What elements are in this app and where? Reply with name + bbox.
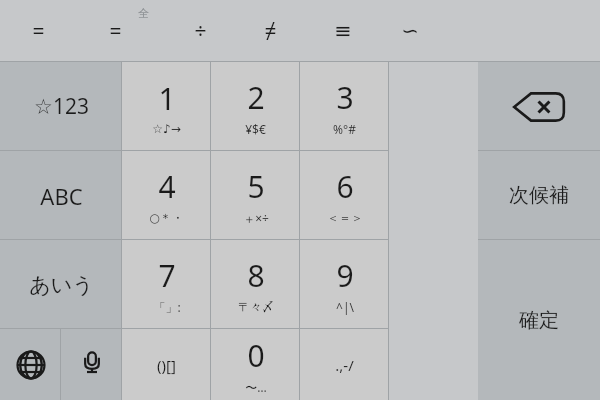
- button[interactable]: Change keyboard: [0, 329, 61, 400]
- staticText: =: [32, 17, 45, 46]
- staticText: 確定: [519, 308, 559, 333]
- button[interactable]: =: [85, 8, 145, 54]
- button[interactable]: 6: [300, 151, 389, 240]
- staticText: ○＊・: [149, 210, 184, 225]
- button[interactable]: 次候補: [478, 151, 600, 240]
- button[interactable]: ABC: [0, 151, 122, 240]
- staticText: 9: [336, 255, 354, 296]
- button[interactable]: ≠: [240, 8, 300, 54]
- staticText: 5: [247, 166, 265, 207]
- staticText: .,-/: [335, 355, 354, 375]
- staticText: ¥$€: [245, 121, 266, 137]
- staticText: 4: [158, 166, 176, 207]
- button[interactable]: あいう: [0, 240, 122, 329]
- staticText: ≡: [334, 19, 352, 43]
- staticText: 〜…: [245, 379, 267, 395]
- staticText: ☆♪→: [152, 122, 181, 136]
- button[interactable]: 7: [122, 240, 211, 329]
- staticText: ()[]: [157, 355, 176, 375]
- button[interactable]: 9: [300, 240, 389, 329]
- button[interactable]: =: [8, 8, 68, 54]
- button[interactable]: 1: [122, 62, 211, 151]
- button[interactable]: Backspace: [478, 62, 600, 151]
- staticText: 全: [138, 6, 149, 20]
- button[interactable]: ≡: [313, 8, 373, 54]
- staticText: 3: [336, 77, 354, 118]
- button[interactable]: ∽: [380, 8, 440, 54]
- staticText: ☆123: [34, 92, 89, 121]
- staticText: =: [109, 17, 122, 46]
- staticText: ∽: [401, 19, 419, 43]
- staticText: 「」:: [153, 299, 181, 315]
- button[interactable]: 0: [211, 329, 300, 400]
- staticText: ÷: [194, 17, 207, 46]
- button[interactable]: 4: [122, 151, 211, 240]
- button[interactable]: ()[]: [122, 329, 211, 400]
- staticText: 1: [158, 78, 176, 119]
- staticText: 2: [247, 77, 265, 118]
- staticText: ABC: [40, 181, 83, 211]
- button[interactable]: 2: [211, 62, 300, 151]
- staticText: あいう: [29, 272, 94, 298]
- button[interactable]: ÷: [170, 8, 230, 54]
- staticText: ≠: [264, 17, 277, 46]
- button[interactable]: ☆123: [0, 62, 122, 151]
- button[interactable]: Voice input: [61, 329, 122, 400]
- button[interactable]: 5: [211, 151, 300, 240]
- staticText: 次候補: [509, 183, 569, 208]
- staticText: ＜＝＞: [327, 210, 363, 225]
- staticText: 7: [158, 255, 176, 296]
- staticText: 6: [336, 166, 354, 207]
- staticText: 8: [247, 255, 265, 296]
- staticText: 〒々〆: [238, 299, 274, 314]
- button[interactable]: 確定: [478, 240, 600, 400]
- button[interactable]: 8: [211, 240, 300, 329]
- button[interactable]: .,-/: [300, 329, 389, 400]
- staticText: %°#: [333, 121, 356, 137]
- staticText: 0: [247, 335, 265, 376]
- staticText: ＋×÷: [243, 210, 269, 226]
- button[interactable]: 3: [300, 62, 389, 151]
- staticText: ^|\: [336, 299, 354, 315]
